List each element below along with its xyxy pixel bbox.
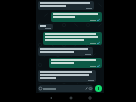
button[interactable] bbox=[38, 24, 53, 30]
other: Emoji bbox=[39, 87, 42, 90]
button[interactable]: Recent apps bbox=[85, 93, 94, 102]
button[interactable] bbox=[38, 47, 93, 56]
button[interactable] bbox=[43, 32, 102, 45]
button[interactable]: Emoji bbox=[38, 85, 93, 92]
button[interactable] bbox=[38, 70, 96, 82]
button[interactable]: Voice message bbox=[95, 85, 102, 92]
button[interactable]: Back bbox=[46, 93, 55, 102]
button[interactable] bbox=[38, 1, 94, 10]
button[interactable] bbox=[49, 58, 102, 68]
other: Attach bbox=[85, 87, 88, 90]
other: Camera bbox=[89, 87, 92, 90]
button[interactable]: Home bbox=[66, 93, 75, 102]
button[interactable] bbox=[51, 12, 102, 22]
